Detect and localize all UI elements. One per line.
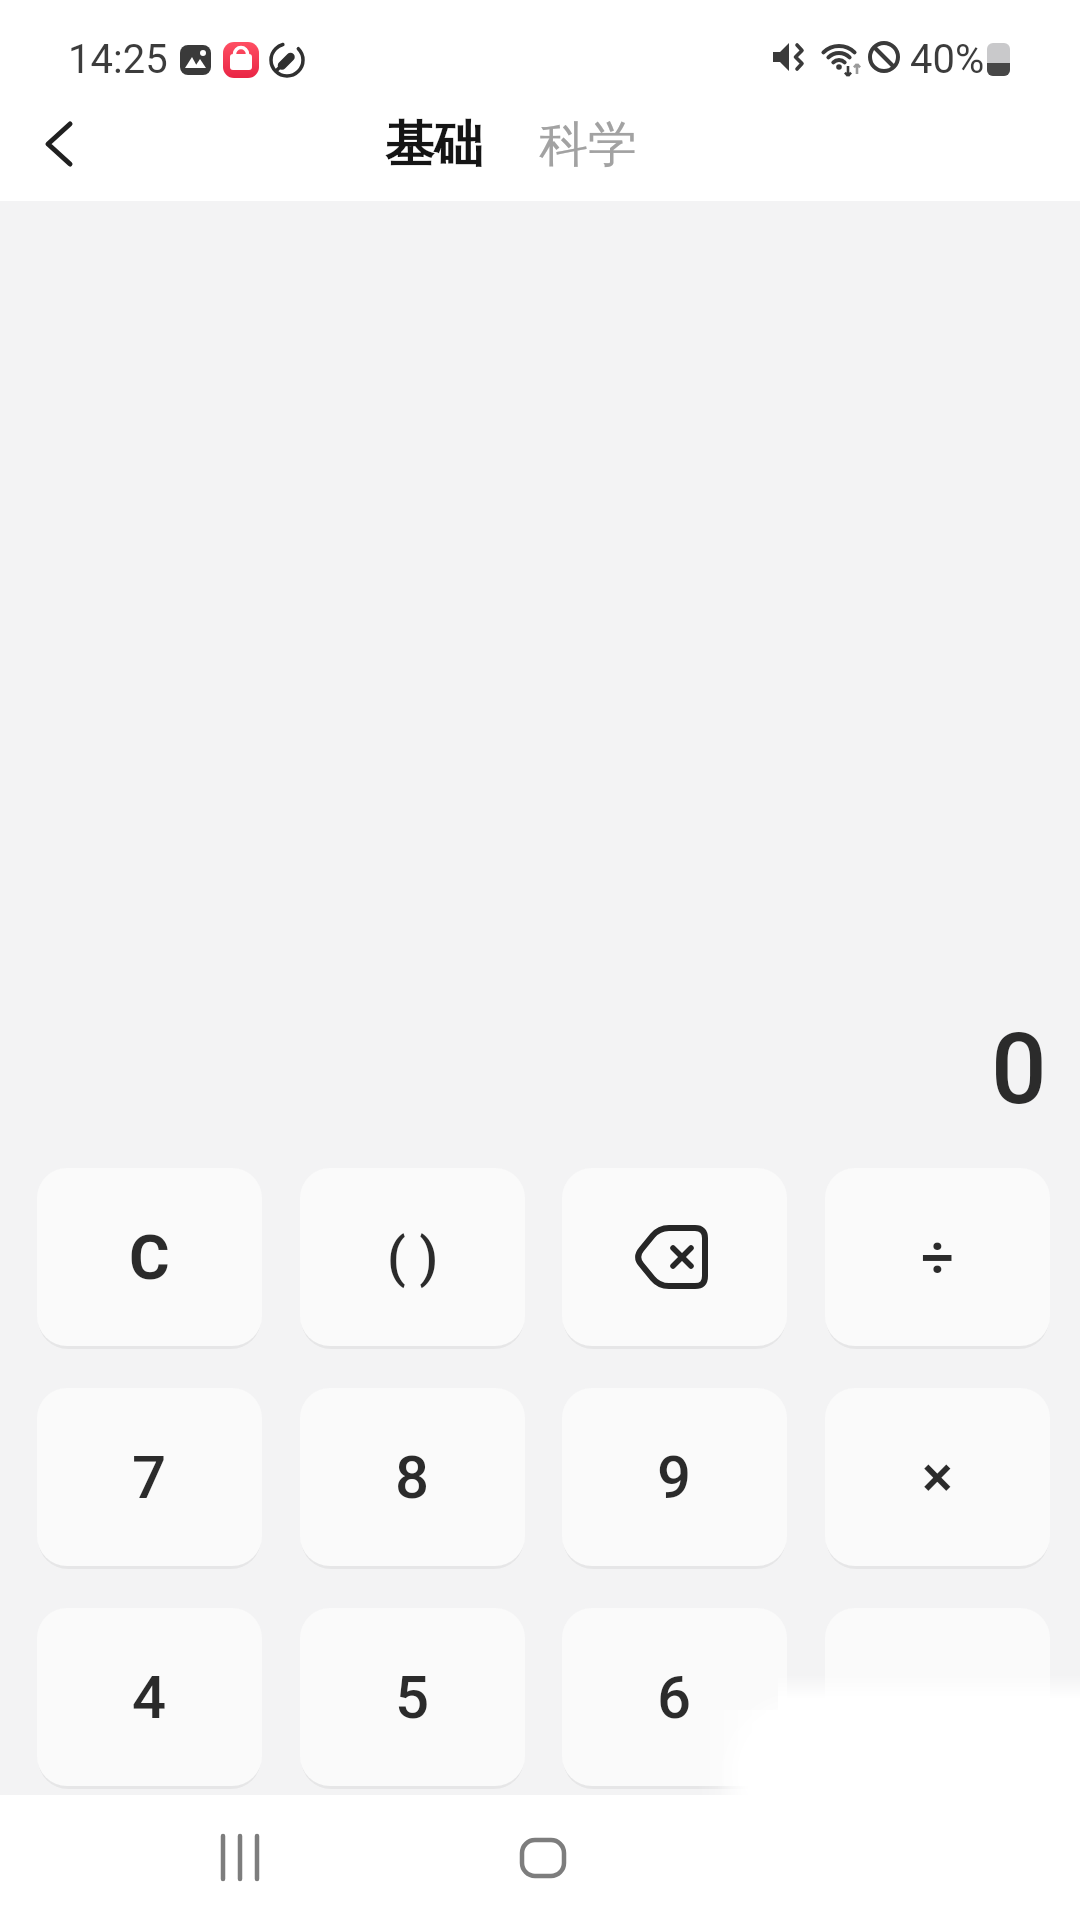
button[interactable] — [562, 1168, 787, 1346]
staticText: 科学 — [539, 114, 637, 176]
staticText: 5 — [395, 1662, 430, 1732]
button[interactable]: 6 — [562, 1608, 787, 1786]
staticText: 4 — [132, 1662, 167, 1732]
staticText: 14:25 — [68, 36, 168, 83]
button[interactable]: ( ) — [300, 1168, 525, 1346]
button[interactable]: 8 — [300, 1388, 525, 1566]
staticText: 40% — [910, 36, 985, 83]
staticText: × — [922, 1443, 953, 1511]
staticText: 8 — [395, 1442, 430, 1512]
button[interactable]: 基础 — [385, 114, 483, 176]
staticText: C — [129, 1221, 170, 1294]
staticText: 6 — [657, 1662, 692, 1732]
staticText: ( ) — [387, 1226, 439, 1289]
staticText: 基础 — [385, 114, 483, 176]
button[interactable]: 9 — [562, 1388, 787, 1566]
button[interactable]: ÷ — [825, 1168, 1050, 1346]
button[interactable]: C — [37, 1168, 262, 1346]
button[interactable]: × — [825, 1388, 1050, 1566]
staticText: 7 — [132, 1442, 167, 1512]
button[interactable] — [493, 1810, 593, 1905]
button[interactable]: 科学 — [539, 114, 637, 176]
staticText: ÷ — [921, 1223, 955, 1291]
button[interactable] — [24, 110, 96, 178]
button[interactable]: 5 — [300, 1608, 525, 1786]
staticText: 9 — [657, 1442, 692, 1512]
button[interactable] — [190, 1810, 290, 1905]
button[interactable]: 4 — [37, 1608, 262, 1786]
staticText: 0 — [991, 1012, 1047, 1127]
button[interactable]: 7 — [37, 1388, 262, 1566]
